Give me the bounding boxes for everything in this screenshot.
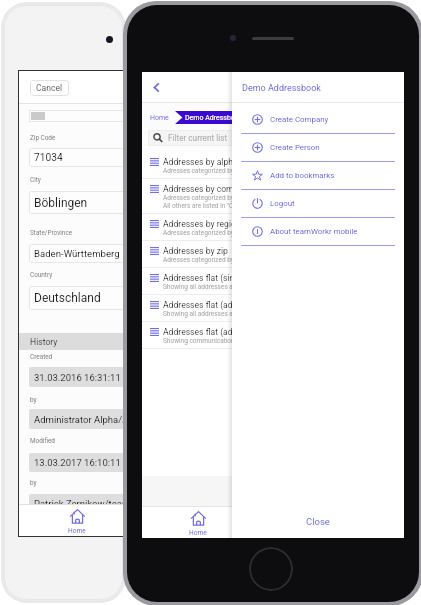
button[interactable]: Addresses by company [142,179,254,214]
staticText: by [30,396,37,404]
staticText: Demo Adressbook [185,114,243,122]
button[interactable]: 13.03.2017 16:10:11 [29,453,125,472]
staticText: Administrator Alpha/Administrator [34,414,125,425]
staticText: by [30,479,37,487]
staticText: Created [30,353,53,361]
staticText: 31.03.2016 16:31:11 [34,372,121,383]
button[interactable]: Home [142,507,254,538]
staticText: Logout [270,199,295,208]
button[interactable]: Addresses flat (advanced2) [142,322,254,349]
staticText: 71034 [34,152,63,164]
button[interactable]: Create Company [232,106,404,134]
button[interactable]: Back [149,80,163,94]
staticText: Showing all addresses and their [163,310,254,318]
staticText: All others are listed in "Others" [163,202,251,210]
staticText: Add to bookmarks [270,171,335,180]
staticText: State/Province [30,229,73,237]
button[interactable]: Patrick Zernikow/teamworkr [29,494,125,513]
staticText: Addresses by company [163,184,252,194]
staticText: Addresses flat (advanced) [163,300,254,310]
button[interactable]: Deutschland [29,286,125,310]
staticText: Addresses by region [163,219,241,229]
staticText: City [30,176,41,184]
staticText: Filter current list [168,133,228,143]
staticText: Patrick Zernikow/teamworkr [34,498,125,509]
button[interactable]: Addresses by alphabet [142,152,254,179]
button[interactable]: Close [232,505,404,538]
staticText: About teamWorkr mobile [270,227,358,236]
button[interactable]: Baden-Württemberg [29,244,125,263]
staticText: Adresses categorized by zip code [163,256,254,264]
staticText: Addresses flat (simple) [163,273,252,283]
button[interactable]: Cancel [36,83,63,93]
button[interactable]: 31.03.2016 16:31:11 [29,367,125,387]
staticText: Adresses categorized by company [163,194,254,202]
button[interactable]: Filter current list [148,130,249,146]
button[interactable]: Create Person [232,134,404,162]
staticText: Cancel [36,83,63,93]
staticText: 13.03.2017 16:10:11 [34,457,121,468]
button[interactable]: Addresses by region [142,214,254,241]
button[interactable]: Böblingen [29,191,125,214]
button[interactable]: Addresses by zip [142,241,254,268]
button[interactable]: Addresses flat (simple) [142,268,254,295]
staticText: Addresses flat (advanced2) [163,327,254,337]
staticText: Demo Addressbook [242,83,321,94]
staticText: History [30,337,58,347]
staticText: Showing communication details [163,337,254,345]
button[interactable]: Home [19,505,134,536]
staticText: Showing all addresses alphabetic [163,283,254,291]
staticText: Create Person [270,143,320,152]
staticText: Home [150,114,169,122]
staticText: Close [306,516,330,527]
staticText: Zip Code [30,134,56,142]
button[interactable]: Addresses flat (advanced) [142,295,254,322]
staticText: Deutschland [34,291,101,305]
staticText: Home [189,529,207,537]
staticText: Adresses categorized by region [163,229,254,237]
button[interactable]: Add to bookmarks [232,162,404,190]
staticText: Country [30,271,53,279]
staticText: Modified [30,437,55,445]
staticText: Create Company [270,115,329,124]
staticText: Baden-Württemberg [34,248,120,259]
staticText: Addresses by zip [163,246,228,256]
staticText: Addresses by alphabet [163,157,250,167]
staticText: Böblingen [34,196,88,210]
button[interactable]: Logout [232,190,404,218]
button[interactable]: 71034 [29,148,125,167]
button[interactable]: About teamWorkr mobile [232,218,404,246]
button[interactable]: Administrator Alpha/Administrator [29,409,125,429]
staticText: Adresses categorized by first letter [163,167,254,175]
staticText: Home [68,527,86,535]
